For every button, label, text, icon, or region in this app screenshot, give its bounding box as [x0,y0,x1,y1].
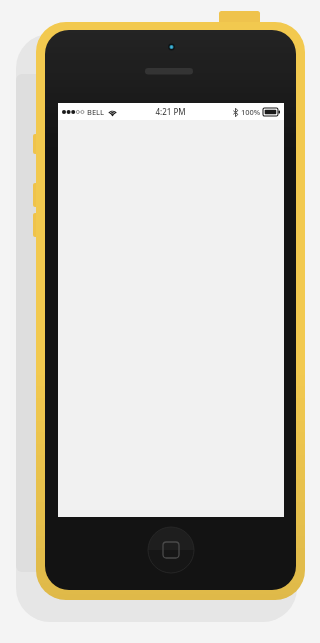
button[interactable]: Power [219,10,260,22]
staticText: BELL [87,107,105,117]
staticText: 4:21 PM [155,106,186,117]
button[interactable]: Home [148,527,194,573]
staticText: 100% [241,107,261,117]
button[interactable]: Silent switch [33,134,40,154]
button[interactable]: Volume up [33,183,40,206]
button[interactable]: Volume down [33,213,40,236]
